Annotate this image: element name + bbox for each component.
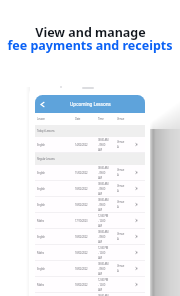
staticText: 08:00 AM - 09:00 AM	[98, 138, 117, 152]
staticText: Maths	[37, 219, 75, 223]
staticText: 08:00 AM - 09:00 AM	[98, 294, 117, 296]
staticText: Lesson	[37, 117, 75, 121]
staticText: English	[37, 267, 75, 271]
staticText: fee payments and receipts	[7, 37, 173, 54]
staticText: 17/10/2023	[75, 219, 98, 223]
staticText: 15/02/2022	[75, 171, 98, 175]
staticText: Venue A	[117, 168, 129, 177]
staticText: 12:00 PM - 12:00 AM	[98, 246, 117, 260]
staticText: Venue A	[117, 140, 129, 149]
staticText: Time	[98, 117, 117, 121]
staticText: 08:00 AM - 09:00 AM	[98, 198, 117, 212]
staticText: Date	[75, 117, 98, 121]
staticText: View and manage	[35, 24, 146, 41]
staticText: 08:00 AM - 09:00 AM	[98, 262, 117, 276]
button[interactable]: English	[35, 261, 145, 276]
staticText: English	[37, 171, 75, 175]
button[interactable]: English	[35, 165, 145, 180]
staticText: 14/02/2022	[75, 143, 98, 147]
staticText: 08:00 AM - 09:00 AM	[98, 182, 117, 196]
staticText: 18/02/2022	[75, 267, 98, 271]
staticText: English	[37, 203, 75, 207]
staticText: Maths	[37, 251, 75, 255]
button[interactable]: English	[35, 229, 145, 244]
staticText: 18/02/2022	[75, 235, 98, 239]
staticText: Venue A	[117, 184, 129, 193]
staticText: Upcoming Lessons	[70, 101, 111, 107]
button[interactable]: English	[35, 293, 145, 296]
button[interactable]: Back	[36, 98, 48, 110]
staticText: Venue A	[117, 232, 129, 241]
button[interactable]: English	[35, 181, 145, 196]
staticText: 08:00 AM - 09:00 AM	[98, 230, 117, 244]
button[interactable]: Maths	[35, 245, 145, 260]
button[interactable]: Maths	[35, 277, 145, 292]
button[interactable]: English	[35, 197, 145, 212]
staticText: Venue A	[117, 264, 129, 273]
staticText: Maths	[37, 283, 75, 287]
button[interactable]: English	[35, 137, 145, 152]
staticText: 18/02/2022	[75, 251, 98, 255]
staticText: Venue A	[117, 200, 129, 209]
staticText: Today's Lessons	[37, 129, 55, 133]
staticText: 08:00 AM - 09:00 AM	[98, 166, 117, 180]
staticText: 12:00 PM - 12:00 AM	[98, 214, 117, 228]
button[interactable]: Maths	[35, 213, 145, 228]
staticText: English	[37, 235, 75, 239]
staticText: Venue	[117, 117, 124, 121]
staticText: English	[37, 143, 75, 147]
staticText: 18/02/2022	[75, 283, 98, 287]
staticText: 18/02/2022	[75, 203, 98, 207]
staticText: Regular Lessons	[37, 157, 55, 161]
staticText: English	[37, 187, 75, 191]
staticText: 12:00 PM - 12:00 AM	[98, 278, 117, 292]
staticText: 18/02/2022	[75, 187, 98, 191]
